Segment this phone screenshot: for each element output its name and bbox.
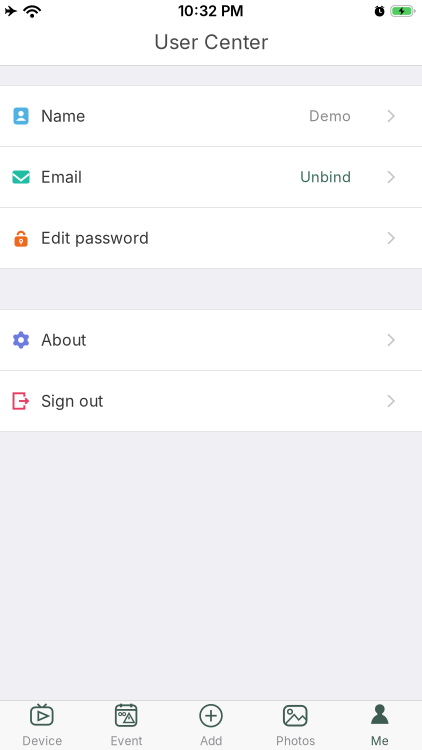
- staticText: Event: [111, 734, 143, 748]
- button[interactable]: About: [0, 310, 422, 370]
- button[interactable]: Sign out: [0, 371, 422, 431]
- staticText: Edit password: [41, 229, 149, 247]
- button[interactable]: Event: [84, 701, 169, 750]
- staticText: Demo: [309, 107, 351, 125]
- button[interactable]: Device: [0, 701, 84, 750]
- staticText: Me: [371, 734, 389, 748]
- button[interactable]: Me: [338, 701, 422, 750]
- staticText: About: [41, 331, 86, 349]
- staticText: Sign out: [41, 392, 103, 410]
- staticText: Email: [41, 168, 82, 186]
- button[interactable]: Name: [0, 86, 422, 146]
- button[interactable]: Photos: [253, 701, 338, 750]
- button[interactable]: Email: [0, 147, 422, 207]
- staticText: 10:32 PM: [178, 2, 244, 20]
- staticText: Unbind: [300, 168, 351, 186]
- staticText: User Center: [154, 30, 268, 54]
- button[interactable]: Edit password: [0, 208, 422, 268]
- staticText: Device: [22, 734, 62, 748]
- staticText: Name: [41, 107, 85, 125]
- staticText: Photos: [276, 734, 315, 748]
- staticText: Add: [200, 734, 222, 748]
- button[interactable]: Add: [169, 701, 253, 750]
